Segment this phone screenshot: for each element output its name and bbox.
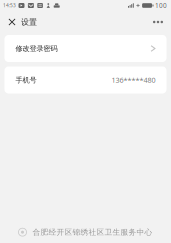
staticText: 手机号 [15, 75, 36, 85]
button[interactable]: 设置 [19, 13, 39, 31]
staticText: 修改登录密码 [15, 44, 57, 53]
staticText: 设置 [21, 17, 37, 27]
staticText: 100 [155, 1, 167, 10]
button[interactable]: 手机号 [4, 66, 166, 93]
button[interactable]: 修改登录密码 [4, 35, 166, 62]
staticText: 14:53 [3, 2, 16, 9]
staticText: 合肥经开区锦绣社区卫生服务中心 [32, 227, 152, 237]
button[interactable]: 关闭 [5, 13, 19, 31]
button[interactable]: 更多 [150, 13, 166, 31]
staticText: 136*****480 [111, 75, 155, 85]
